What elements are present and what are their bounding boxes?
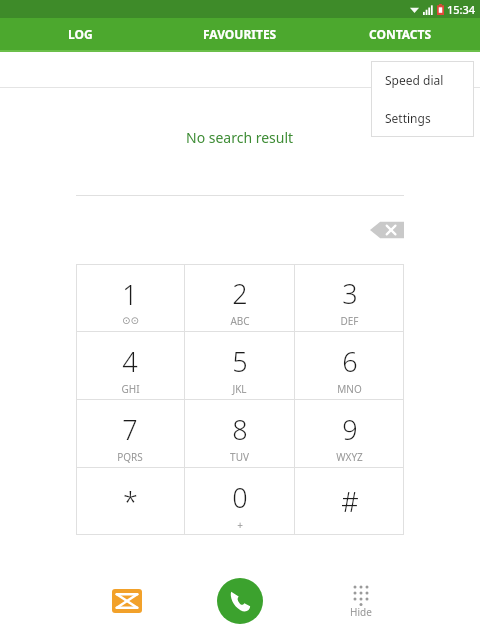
staticText: 5 (232, 343, 248, 380)
button[interactable]: 9 (295, 400, 404, 467)
button[interactable]: 4 (76, 332, 184, 399)
staticText: 9 (342, 411, 358, 448)
button[interactable]: 1 (76, 264, 184, 331)
button[interactable]: FAVOURITES (160, 18, 320, 50)
staticText: No search result (186, 128, 294, 147)
button[interactable]: 8 (185, 400, 294, 467)
staticText: MNO (337, 382, 362, 396)
staticText: JKL (232, 382, 247, 396)
button[interactable]: 2 (185, 264, 294, 331)
button[interactable]: 6 (295, 332, 404, 399)
button[interactable]: 3 (295, 264, 404, 331)
button[interactable]: * (76, 468, 184, 535)
staticText: CONTACTS (369, 26, 432, 42)
staticText: GHI (121, 382, 140, 396)
staticText: 4 (122, 343, 138, 380)
staticText: TUV (230, 450, 249, 464)
staticText: Settings (385, 110, 431, 126)
button[interactable]: 0 (185, 468, 294, 535)
staticText: 8 (232, 411, 248, 448)
staticText: ⊙⊙ (122, 315, 139, 327)
staticText: 6 (342, 343, 358, 380)
staticText: * (123, 483, 138, 520)
staticText: 15:34 (447, 2, 476, 17)
staticText: Hide (350, 605, 372, 619)
staticText: 0 (232, 479, 248, 516)
button[interactable]: 7 (76, 400, 184, 467)
button[interactable]: Backspace (370, 219, 404, 241)
staticText: DEF (340, 314, 359, 328)
button[interactable]: CONTACTS (320, 18, 480, 50)
button[interactable]: # (295, 468, 404, 535)
button[interactable]: LOG (0, 18, 160, 50)
button[interactable]: Call (217, 578, 263, 624)
button[interactable]: Speed dial (371, 61, 474, 99)
staticText: + (237, 518, 243, 532)
button[interactable]: Message (112, 589, 142, 613)
button[interactable]: 5 (185, 332, 294, 399)
staticText: LOG (68, 26, 93, 42)
button[interactable]: Hide keypad (350, 584, 372, 619)
staticText: # (341, 483, 359, 520)
staticText: WXYZ (336, 450, 363, 464)
staticText: 3 (342, 275, 358, 312)
staticText: FAVOURITES (203, 26, 277, 42)
staticText: ABC (230, 314, 250, 328)
staticText: 1 (122, 276, 138, 313)
staticText: 2 (232, 275, 248, 312)
staticText: Speed dial (385, 72, 444, 88)
staticText: 7 (122, 411, 138, 448)
button[interactable]: Settings (371, 99, 474, 137)
staticText: PQRS (117, 450, 143, 464)
